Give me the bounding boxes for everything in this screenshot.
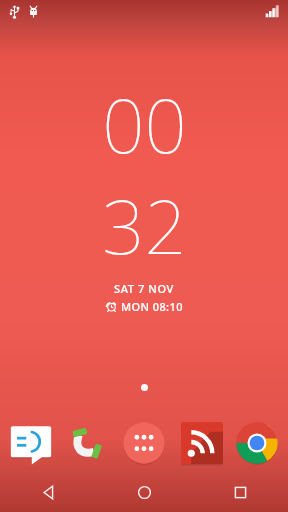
other: Alarm xyxy=(106,301,117,312)
button[interactable]: 00 xyxy=(0,74,288,314)
button[interactable]: Recent apps xyxy=(192,472,288,512)
other: Signal strength xyxy=(265,4,279,18)
button[interactable]: Chrome xyxy=(234,420,280,466)
staticText: 00 xyxy=(102,74,187,175)
staticText: MON 08:10 xyxy=(121,299,183,314)
button[interactable]: Back xyxy=(0,472,96,512)
staticText: 32 xyxy=(102,175,187,276)
button[interactable]: Messaging xyxy=(8,420,54,466)
other: USB debugging xyxy=(27,5,40,18)
button[interactable]: Phone xyxy=(64,420,110,466)
other: USB connected xyxy=(8,5,21,18)
button[interactable]: Home xyxy=(96,472,192,512)
button[interactable]: News feed xyxy=(179,420,225,466)
staticText: SAT 7 NOV xyxy=(114,281,174,296)
button[interactable]: Apps xyxy=(119,418,169,468)
